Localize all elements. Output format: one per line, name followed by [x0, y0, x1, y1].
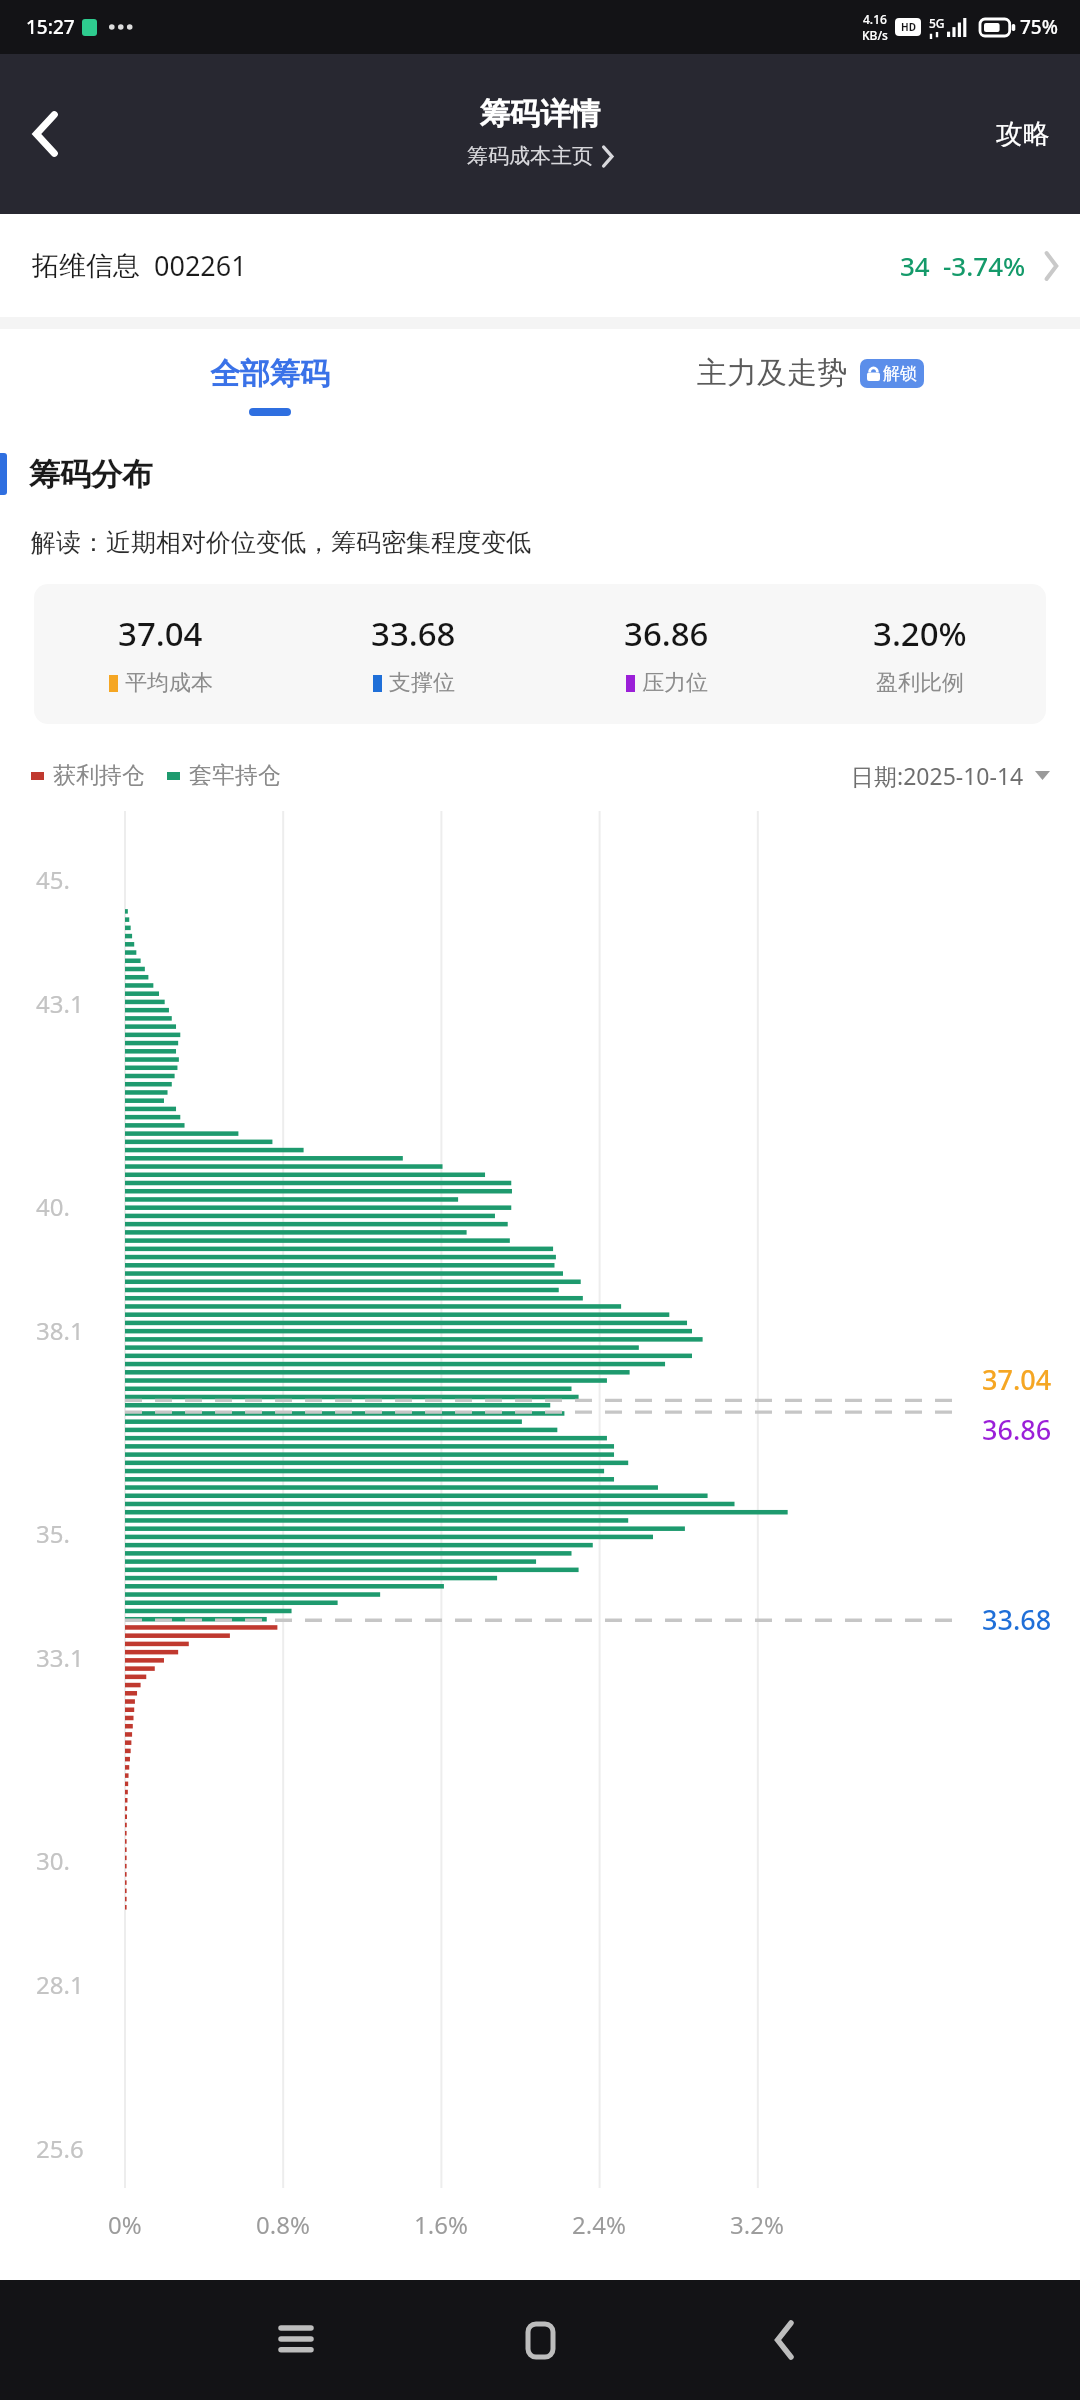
button[interactable]: Back — [6, 94, 86, 174]
staticText: 3.20% — [873, 611, 967, 656]
staticText: 36.86 — [624, 611, 709, 656]
staticText: 拓维信息 — [32, 249, 140, 283]
staticText: 25.6 — [36, 2132, 84, 2165]
button[interactable]: Home — [418, 2280, 662, 2400]
staticText: 全部筹码 — [210, 355, 330, 393]
staticText: 0.8% — [256, 2208, 310, 2241]
staticText: HD — [901, 20, 916, 34]
staticText: 解读：近期相对价位变低，筹码密集程度变低 — [31, 527, 531, 558]
staticText: 36.86 — [982, 1411, 1052, 1448]
staticText: 34 — [900, 248, 930, 283]
button[interactable]: Recents — [174, 2280, 418, 2400]
button[interactable]: 3.20% — [793, 611, 1046, 697]
button[interactable]: 33.68 — [287, 611, 540, 697]
staticText: 5G — [929, 15, 945, 31]
staticText: 0% — [108, 2208, 142, 2241]
staticText: 75% — [1020, 14, 1058, 40]
button[interactable]: 筹码成本主页 — [467, 143, 613, 169]
staticText: 日期:2025-10-14 — [851, 760, 1024, 791]
staticText: 攻略 — [996, 117, 1050, 151]
staticText: 筹码详情 — [480, 95, 600, 133]
staticText: 43.1 — [36, 987, 84, 1020]
staticText: 获利持仓 — [53, 761, 145, 790]
staticText: 40. — [36, 1190, 70, 1223]
staticText: 45. — [36, 863, 70, 896]
staticText: 主力及走势 — [697, 354, 847, 392]
staticText: 筹码成本主页 — [467, 143, 593, 169]
button[interactable]: 全部筹码 — [0, 329, 540, 441]
button[interactable]: 拓维信息 — [0, 214, 1080, 317]
staticText: -3.74% — [943, 248, 1026, 283]
staticText: 33.68 — [982, 1601, 1052, 1638]
staticText: 平均成本 — [125, 669, 213, 697]
staticText: 35. — [36, 1517, 70, 1550]
staticText: 28.1 — [36, 1968, 84, 2001]
button[interactable]: 日期:2025-10-14 — [851, 760, 1050, 791]
staticText: 37.04 — [982, 1361, 1052, 1398]
staticText: 33.68 — [371, 611, 456, 656]
staticText: 37.04 — [118, 611, 203, 656]
button[interactable]: 37.04 — [34, 611, 287, 697]
staticText: 30. — [36, 1844, 70, 1877]
staticText: 支撑位 — [389, 669, 455, 697]
button[interactable]: 主力及走势 — [540, 329, 1080, 441]
staticText: 33.1 — [36, 1641, 84, 1674]
staticText: 15:27 — [26, 14, 75, 40]
staticText: 盈利比例 — [876, 669, 964, 697]
staticText: 38.1 — [36, 1314, 84, 1347]
staticText: KB/s — [862, 27, 888, 43]
staticText: 002261 — [154, 247, 247, 284]
staticText: 1.6% — [414, 2208, 468, 2241]
button[interactable]: 攻略 — [984, 101, 1062, 167]
staticText: 压力位 — [642, 669, 708, 697]
button[interactable]: Back — [662, 2280, 906, 2400]
staticText: 解锁 — [883, 363, 917, 384]
staticText: 3.2% — [730, 2208, 784, 2241]
staticText: 4.16 — [863, 11, 887, 27]
staticText: 2.4% — [572, 2208, 626, 2241]
button[interactable]: 36.86 — [540, 611, 793, 697]
staticText: 套牢持仓 — [189, 761, 281, 790]
staticText: 筹码分布 — [29, 455, 153, 494]
